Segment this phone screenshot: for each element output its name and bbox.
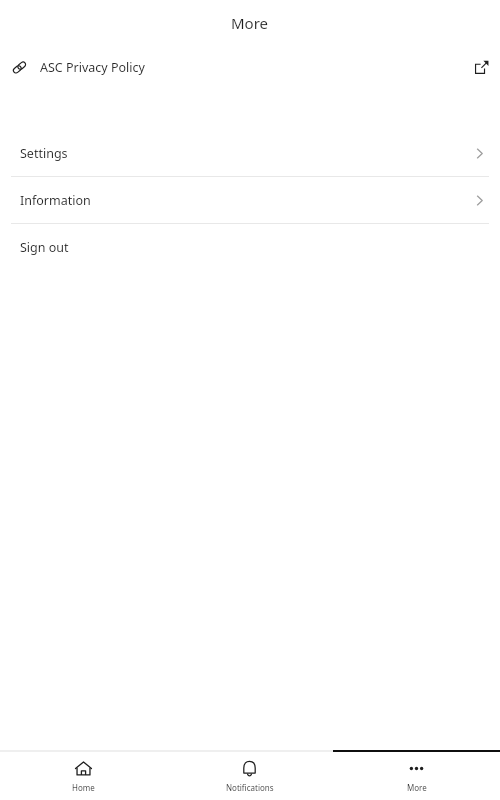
button[interactable]: More [333, 752, 500, 800]
staticText: Settings [20, 145, 68, 162]
button[interactable]: Sign out [0, 224, 500, 270]
button[interactable]: Home [0, 752, 166, 800]
staticText: More [231, 13, 269, 33]
staticText: Notifications [226, 782, 274, 793]
button[interactable]: ASC Privacy Policy [0, 46, 500, 88]
other: Information [471, 192, 488, 209]
button[interactable]: Information [0, 177, 500, 223]
other: Open in new window [475, 60, 489, 74]
button[interactable]: Settings [0, 130, 500, 176]
staticText: Sign out [20, 239, 69, 256]
staticText: Information [20, 192, 91, 209]
staticText: Home [72, 782, 95, 793]
other: Settings [471, 145, 488, 162]
staticText: More [407, 782, 427, 793]
button[interactable]: Notifications [166, 752, 333, 800]
staticText: ASC Privacy Policy [40, 59, 145, 76]
